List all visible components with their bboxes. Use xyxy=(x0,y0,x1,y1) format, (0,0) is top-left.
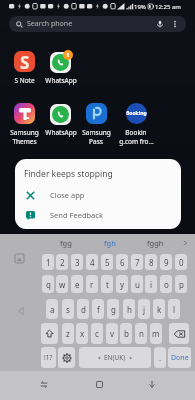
button[interactable]: 5 xyxy=(101,254,113,270)
button[interactable]: o xyxy=(160,275,172,293)
staticText: y xyxy=(120,279,125,290)
button[interactable]: 7 xyxy=(131,254,143,270)
button[interactable]: 1 xyxy=(42,254,54,270)
button[interactable]: Home xyxy=(87,372,111,396)
button[interactable]: i xyxy=(145,275,157,293)
button[interactable]: Close app xyxy=(15,184,181,206)
staticText: o xyxy=(164,279,169,290)
button[interactable]: u xyxy=(131,275,143,293)
button[interactable]: Previous xyxy=(15,305,26,316)
button[interactable]: 6 xyxy=(116,254,128,270)
button[interactable]: Shift xyxy=(41,323,58,344)
staticText: j xyxy=(143,304,146,315)
staticText: d xyxy=(81,304,86,315)
staticText: k xyxy=(157,304,162,315)
staticText: 6 xyxy=(120,257,125,268)
button[interactable]: e xyxy=(71,275,83,293)
staticText: s xyxy=(66,304,70,315)
staticText: 9 xyxy=(164,257,169,268)
staticText: q xyxy=(46,279,51,290)
staticText: h xyxy=(127,304,132,315)
staticText: Send Feedback xyxy=(50,210,103,220)
staticText: z xyxy=(66,328,70,339)
staticText: fggh xyxy=(147,238,164,248)
staticText: 8 xyxy=(149,257,154,268)
button[interactable]: a xyxy=(46,299,58,319)
button[interactable]: 4 xyxy=(86,254,98,270)
button[interactable]: 2 xyxy=(56,254,68,270)
button[interactable]: c xyxy=(91,323,103,344)
button[interactable]: Handwriting xyxy=(14,253,25,264)
button[interactable]: p xyxy=(175,275,187,293)
staticText: 7 xyxy=(135,257,140,268)
button[interactable]: 9 xyxy=(160,254,172,270)
button[interactable]: S xyxy=(5,50,43,85)
button[interactable]: 8 xyxy=(145,254,157,270)
button[interactable]: y xyxy=(116,275,128,293)
staticText: 1 xyxy=(66,51,70,59)
staticText: l xyxy=(173,304,176,315)
staticText: !1? xyxy=(44,353,53,362)
button[interactable]: Samsung xyxy=(77,102,115,146)
staticText: Pass xyxy=(89,137,103,146)
button[interactable]: More suggestions xyxy=(179,237,191,249)
staticText: 2 xyxy=(60,257,65,268)
button[interactable]: More options xyxy=(170,19,180,29)
button[interactable]: 3 xyxy=(71,254,83,270)
button[interactable]: g xyxy=(107,299,119,319)
button[interactable]: . xyxy=(154,347,166,368)
button[interactable]: w xyxy=(56,275,68,293)
button[interactable]: j xyxy=(138,299,150,319)
button[interactable]: Search phone xyxy=(9,16,186,32)
staticText: a xyxy=(50,304,55,315)
button[interactable]: Samsung xyxy=(5,102,43,146)
button[interactable]: !1? xyxy=(41,347,56,368)
button[interactable]: n xyxy=(135,323,147,344)
button[interactable]: Backspace xyxy=(169,323,189,344)
button[interactable]: f xyxy=(92,299,104,319)
button[interactable]: fggh xyxy=(135,235,175,251)
staticText: Search phone xyxy=(27,19,73,29)
button[interactable]: 1 xyxy=(42,50,80,85)
button[interactable]: l xyxy=(168,299,180,319)
button[interactable]: x xyxy=(76,323,88,344)
button[interactable]: EN(UK) xyxy=(79,347,151,368)
staticText: Samsung xyxy=(10,128,39,137)
button[interactable]: d xyxy=(77,299,89,319)
button[interactable]: r xyxy=(86,275,98,293)
button[interactable]: Recent apps xyxy=(32,372,56,396)
button[interactable]: k xyxy=(153,299,165,319)
button[interactable]: h xyxy=(123,299,135,319)
button[interactable]: b xyxy=(120,323,132,344)
staticText: . xyxy=(159,352,162,363)
staticText: 4 xyxy=(90,257,95,268)
staticText: Finder keeps stopping xyxy=(24,168,113,180)
button[interactable]: fgg xyxy=(46,235,86,251)
button[interactable]: 0 xyxy=(175,254,187,270)
button[interactable]: Hide keyboard xyxy=(140,372,164,396)
button[interactable]: q xyxy=(42,275,54,293)
button[interactable]: fgh xyxy=(90,235,130,251)
button[interactable]: t xyxy=(101,275,113,293)
staticText: m xyxy=(152,328,160,339)
button[interactable]: m xyxy=(150,323,162,344)
staticText: Close app xyxy=(50,190,85,200)
staticText: 0 xyxy=(179,257,184,268)
button[interactable]: s xyxy=(62,299,74,319)
button[interactable]: Keyboard settings xyxy=(58,347,75,368)
button[interactable]: Voice search xyxy=(155,19,165,29)
staticText: e xyxy=(75,279,80,290)
staticText: p xyxy=(179,279,184,290)
button[interactable]: z xyxy=(62,323,74,344)
button[interactable]: WhatsApp xyxy=(42,102,80,137)
button[interactable]: Done xyxy=(168,347,191,368)
staticText: 1 xyxy=(46,257,51,268)
staticText: Booking xyxy=(126,110,147,117)
staticText: S Note xyxy=(14,76,35,85)
button[interactable]: Send Feedback xyxy=(15,204,181,226)
staticText: n xyxy=(139,328,144,339)
staticText: WhatsApp xyxy=(45,128,77,137)
staticText: fgg xyxy=(60,238,72,248)
button[interactable]: v xyxy=(106,323,118,344)
button[interactable]: Booking xyxy=(117,102,155,146)
